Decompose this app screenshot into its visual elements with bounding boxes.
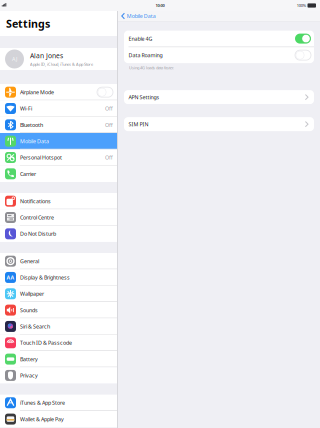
- button[interactable]: Touch ID & Passcode: [0, 335, 117, 351]
- staticText: Wi-Fi: [20, 105, 32, 112]
- button[interactable]: APN Settings: [124, 90, 314, 104]
- staticText: Airplane Mode: [20, 89, 54, 96]
- button[interactable]: Carrier: [0, 166, 117, 182]
- staticText: iTunes & App Store: [20, 399, 65, 406]
- button[interactable]: Control Centre: [0, 209, 117, 226]
- button[interactable]: Battery: [0, 351, 117, 367]
- staticText: Off: [105, 121, 113, 128]
- staticText: Apple ID, iCloud, iTunes & App Store: [30, 61, 93, 67]
- staticText: Display & Brightness: [20, 274, 70, 281]
- staticText: Using 4G loads data faster.: [129, 65, 174, 70]
- button[interactable]: General: [0, 253, 117, 269]
- staticText: Alan Jones: [30, 51, 63, 60]
- staticText: Siri & Search: [20, 323, 50, 330]
- staticText: Notifications: [20, 198, 51, 205]
- staticText: AJ: [12, 55, 17, 63]
- button[interactable]: AA: [0, 269, 117, 286]
- button[interactable]: AJ: [0, 48, 117, 70]
- staticText: Data Roaming: [128, 52, 162, 59]
- button[interactable]: Wallet & Apple Pay: [0, 411, 117, 427]
- staticText: Privacy: [20, 372, 38, 379]
- staticText: 100%: [297, 3, 306, 8]
- staticText: General: [20, 258, 39, 265]
- staticText: AA: [6, 274, 14, 281]
- staticText: Settings: [6, 16, 50, 31]
- staticText: Mobile Data: [20, 138, 49, 145]
- button[interactable]: Airplane Mode: [0, 84, 117, 100]
- staticText: Wallet & Apple Pay: [20, 416, 64, 423]
- staticText: Wallpaper: [20, 290, 44, 297]
- button[interactable]: Mobile Data: [118, 11, 160, 21]
- staticText: Control Centre: [20, 214, 54, 221]
- button[interactable]: Siri & Search: [0, 318, 117, 335]
- staticText: APN Settings: [128, 94, 159, 101]
- staticText: Do Not Disturb: [20, 230, 56, 237]
- button[interactable]: Wallpaper: [0, 286, 117, 302]
- staticText: Carrier: [20, 170, 36, 177]
- button[interactable]: Notifications: [0, 193, 117, 209]
- staticText: Off: [105, 154, 113, 161]
- staticText: Battery: [20, 356, 38, 363]
- button[interactable]: iTunes & App Store: [0, 395, 117, 411]
- button[interactable]: Bluetooth: [0, 117, 117, 133]
- button[interactable]: Sounds: [0, 302, 117, 318]
- staticText: 10:00: [155, 3, 164, 8]
- staticText: Enable 4G: [128, 35, 152, 42]
- button[interactable]: Do Not Disturb: [0, 226, 117, 242]
- button[interactable]: Personal Hotspot: [0, 149, 117, 166]
- staticText: Bluetooth: [20, 121, 43, 128]
- staticText: Personal Hotspot: [20, 154, 62, 161]
- button[interactable]: Wi-Fi: [0, 100, 117, 117]
- button[interactable]: Privacy: [0, 367, 117, 384]
- staticText: Mobile Data: [127, 12, 156, 20]
- staticText: Off: [105, 105, 113, 112]
- staticText: SIM PIN: [128, 121, 148, 128]
- button[interactable]: SIM PIN: [124, 117, 314, 131]
- button[interactable]: Mobile Data: [0, 133, 117, 149]
- staticText: Touch ID & Passcode: [20, 339, 72, 346]
- staticText: Sounds: [20, 307, 38, 314]
